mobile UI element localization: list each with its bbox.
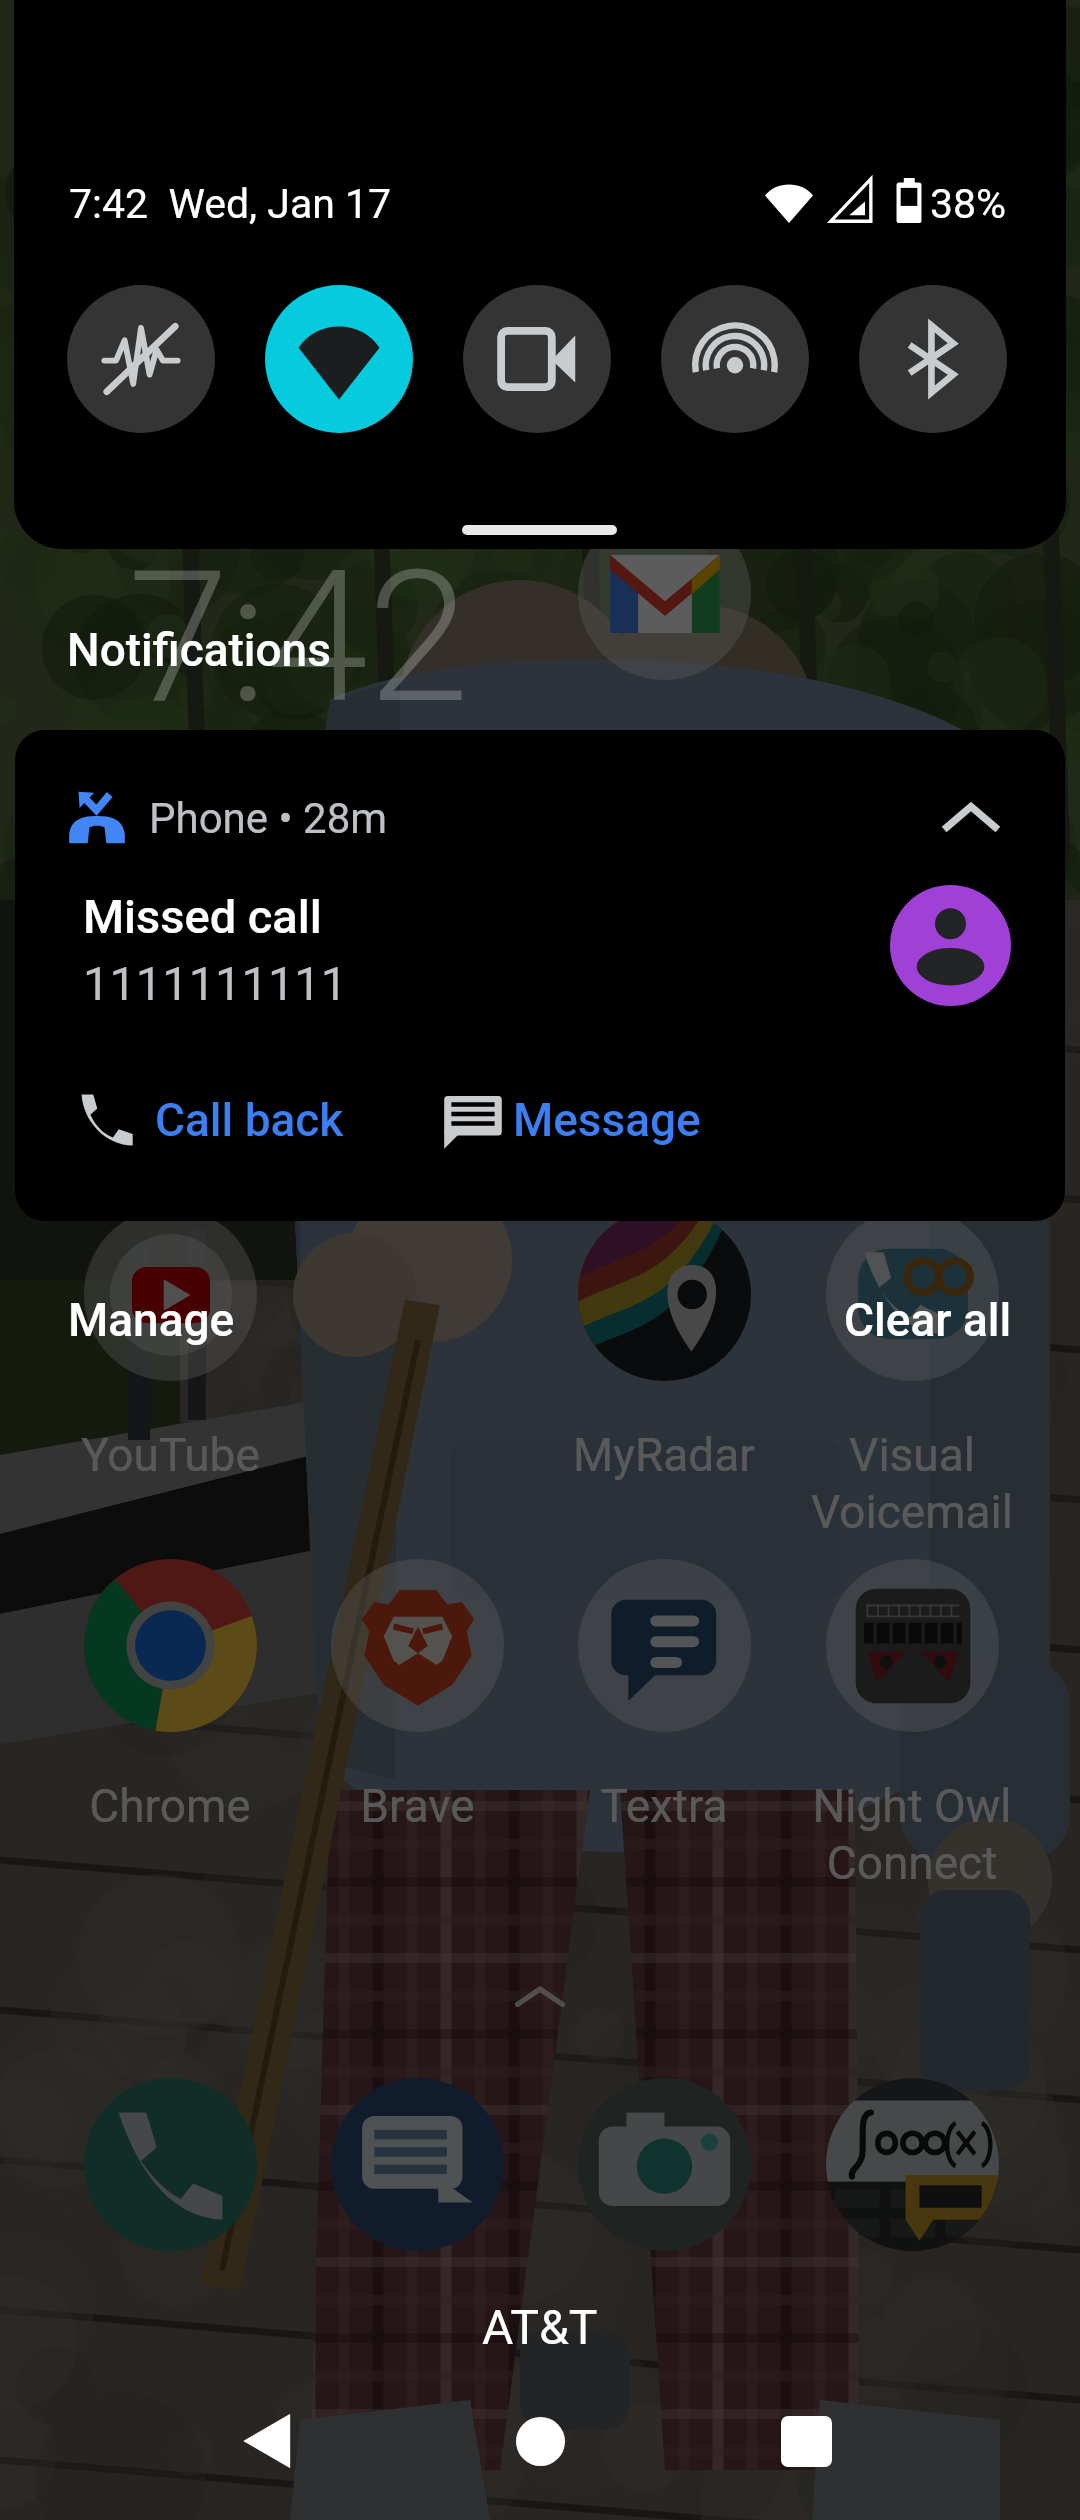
staticText: Manage bbox=[68, 1293, 235, 1347]
button[interactable]: Silent bbox=[67, 285, 215, 433]
staticText: Visual Voicemail bbox=[811, 1428, 1013, 1539]
staticText: Phone • 28m bbox=[149, 794, 388, 843]
button[interactable]: Back bbox=[222, 2396, 312, 2486]
staticText: Chrome bbox=[89, 1779, 251, 1833]
button[interactable]: Home bbox=[495, 2396, 585, 2486]
button[interactable]: Recents bbox=[761, 2396, 851, 2486]
button[interactable]: Chrome bbox=[84, 1559, 257, 1732]
button[interactable]: App bbox=[331, 2078, 504, 2251]
staticText: Clear all bbox=[844, 1293, 1012, 1347]
button[interactable]: Bluetooth bbox=[859, 285, 1007, 433]
button[interactable]: App bbox=[84, 2078, 257, 2251]
button[interactable]: Manage bbox=[68, 1293, 235, 1347]
staticText: 1111111111 bbox=[83, 956, 348, 1011]
button[interactable]: YouTube bbox=[84, 1208, 257, 1381]
staticText: AT&T bbox=[482, 2299, 598, 2355]
button[interactable]: Phone • 28m bbox=[15, 730, 1065, 1221]
button[interactable]: MyRadar bbox=[578, 1208, 751, 1381]
staticText: Message bbox=[513, 1093, 701, 1147]
button[interactable]: Clear all bbox=[844, 1293, 1012, 1347]
button[interactable]: Cast bbox=[463, 285, 611, 433]
button[interactable]: Wi-Fi bbox=[265, 285, 413, 433]
button[interactable]: App bbox=[826, 2078, 999, 2251]
button[interactable]: Call back bbox=[77, 1080, 344, 1160]
button[interactable]: Brave bbox=[331, 1559, 504, 1732]
button[interactable]: Collapse bbox=[931, 778, 1011, 858]
staticText: 7:42 bbox=[128, 531, 470, 744]
button[interactable]: App bbox=[578, 2078, 751, 2251]
staticText: Textra bbox=[600, 1779, 728, 1833]
button[interactable]: Gmail bbox=[578, 507, 751, 680]
staticText: Night Owl Connect bbox=[812, 1779, 1012, 1890]
button[interactable]: Message bbox=[443, 1080, 701, 1160]
staticText: Call back bbox=[155, 1093, 344, 1147]
staticText: Missed call bbox=[83, 889, 322, 944]
staticText: MyRadar bbox=[573, 1428, 755, 1482]
button[interactable]: Night Owl Connect bbox=[826, 1559, 999, 1732]
staticText: 7:42 Wed, Jan 17 bbox=[69, 180, 392, 228]
button[interactable]: Hotspot bbox=[661, 285, 809, 433]
staticText: Brave bbox=[360, 1779, 475, 1833]
staticText: Notifications bbox=[67, 623, 331, 677]
button[interactable]: Visual Voicemail bbox=[826, 1208, 999, 1381]
staticText: 38% bbox=[930, 180, 1007, 228]
staticText: YouTube bbox=[81, 1428, 260, 1482]
button[interactable]: Textra bbox=[578, 1559, 751, 1732]
